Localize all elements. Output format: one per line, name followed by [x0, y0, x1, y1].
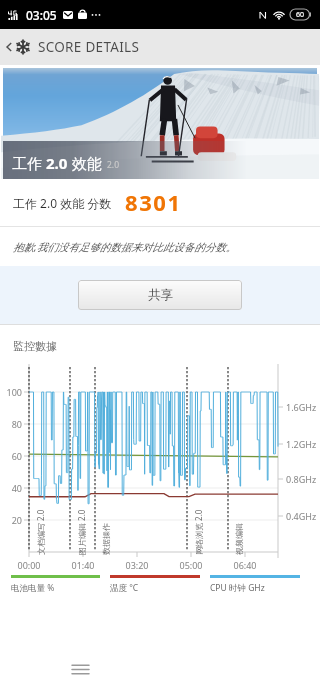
staticText: 工作 [12, 153, 46, 173]
staticText: 60 [296, 10, 305, 20]
button[interactable]: Recents [64, 653, 96, 685]
staticText: 1.6GHz [286, 401, 317, 413]
staticText: 数据操作 [101, 523, 111, 555]
staticText: CPU 时钟 GHz [210, 582, 265, 594]
button[interactable]: Back [0, 29, 320, 65]
staticText: 共享 [148, 287, 173, 303]
staticText: 文档编写 2.0 [35, 509, 46, 555]
staticText: 视频编辑 [234, 523, 244, 555]
staticText: 80 [0, 418, 22, 430]
staticText: 03:20 [121, 559, 153, 571]
staticText: 图片编辑 2.0 [76, 509, 87, 555]
staticText: 01:40 [67, 559, 99, 571]
staticText: 05:00 [175, 559, 207, 571]
staticText: 0.4GHz [286, 510, 317, 522]
staticText: 电池电量 % [11, 582, 55, 594]
staticText: 60 [0, 450, 22, 462]
staticText: 工作 2.0 效能 分数 [13, 195, 112, 211]
staticText: 40 [0, 482, 22, 494]
staticText: 06:40 [229, 559, 261, 571]
staticText: 03:05 [26, 7, 57, 23]
staticText: SCORE DETAILS [38, 38, 140, 56]
staticText: 2.0 [107, 159, 120, 171]
staticText: 1.2GHz [286, 438, 317, 450]
staticText: 0.8GHz [286, 473, 317, 485]
staticText: 00:00 [13, 559, 45, 571]
staticText: 2.0 [46, 153, 68, 173]
button[interactable]: 共享 [78, 280, 242, 310]
staticText: 8301 [125, 187, 182, 217]
other: Back [4, 40, 14, 54]
staticText: 抱歉,我们没有足够的数据来对比此设备的分数。 [13, 240, 237, 254]
staticText: 監控數據 [13, 339, 57, 353]
staticText: 100 [0, 386, 22, 398]
staticText: 20 [0, 514, 22, 526]
staticText: 网络浏览 2.0 [193, 509, 204, 555]
staticText: 温度 °C [110, 582, 139, 594]
staticText: 效能 [68, 153, 102, 173]
